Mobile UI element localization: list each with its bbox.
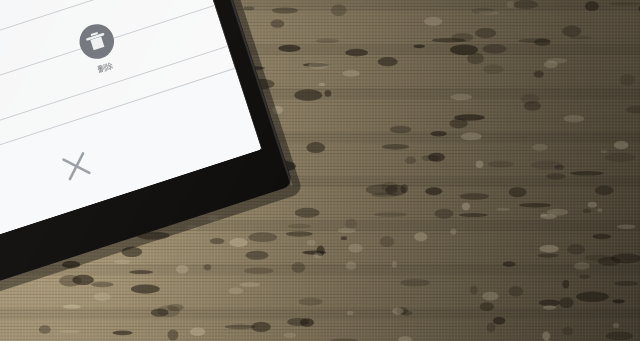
- button[interactable]: Tablet file manager photo: [0, 0, 640, 341]
